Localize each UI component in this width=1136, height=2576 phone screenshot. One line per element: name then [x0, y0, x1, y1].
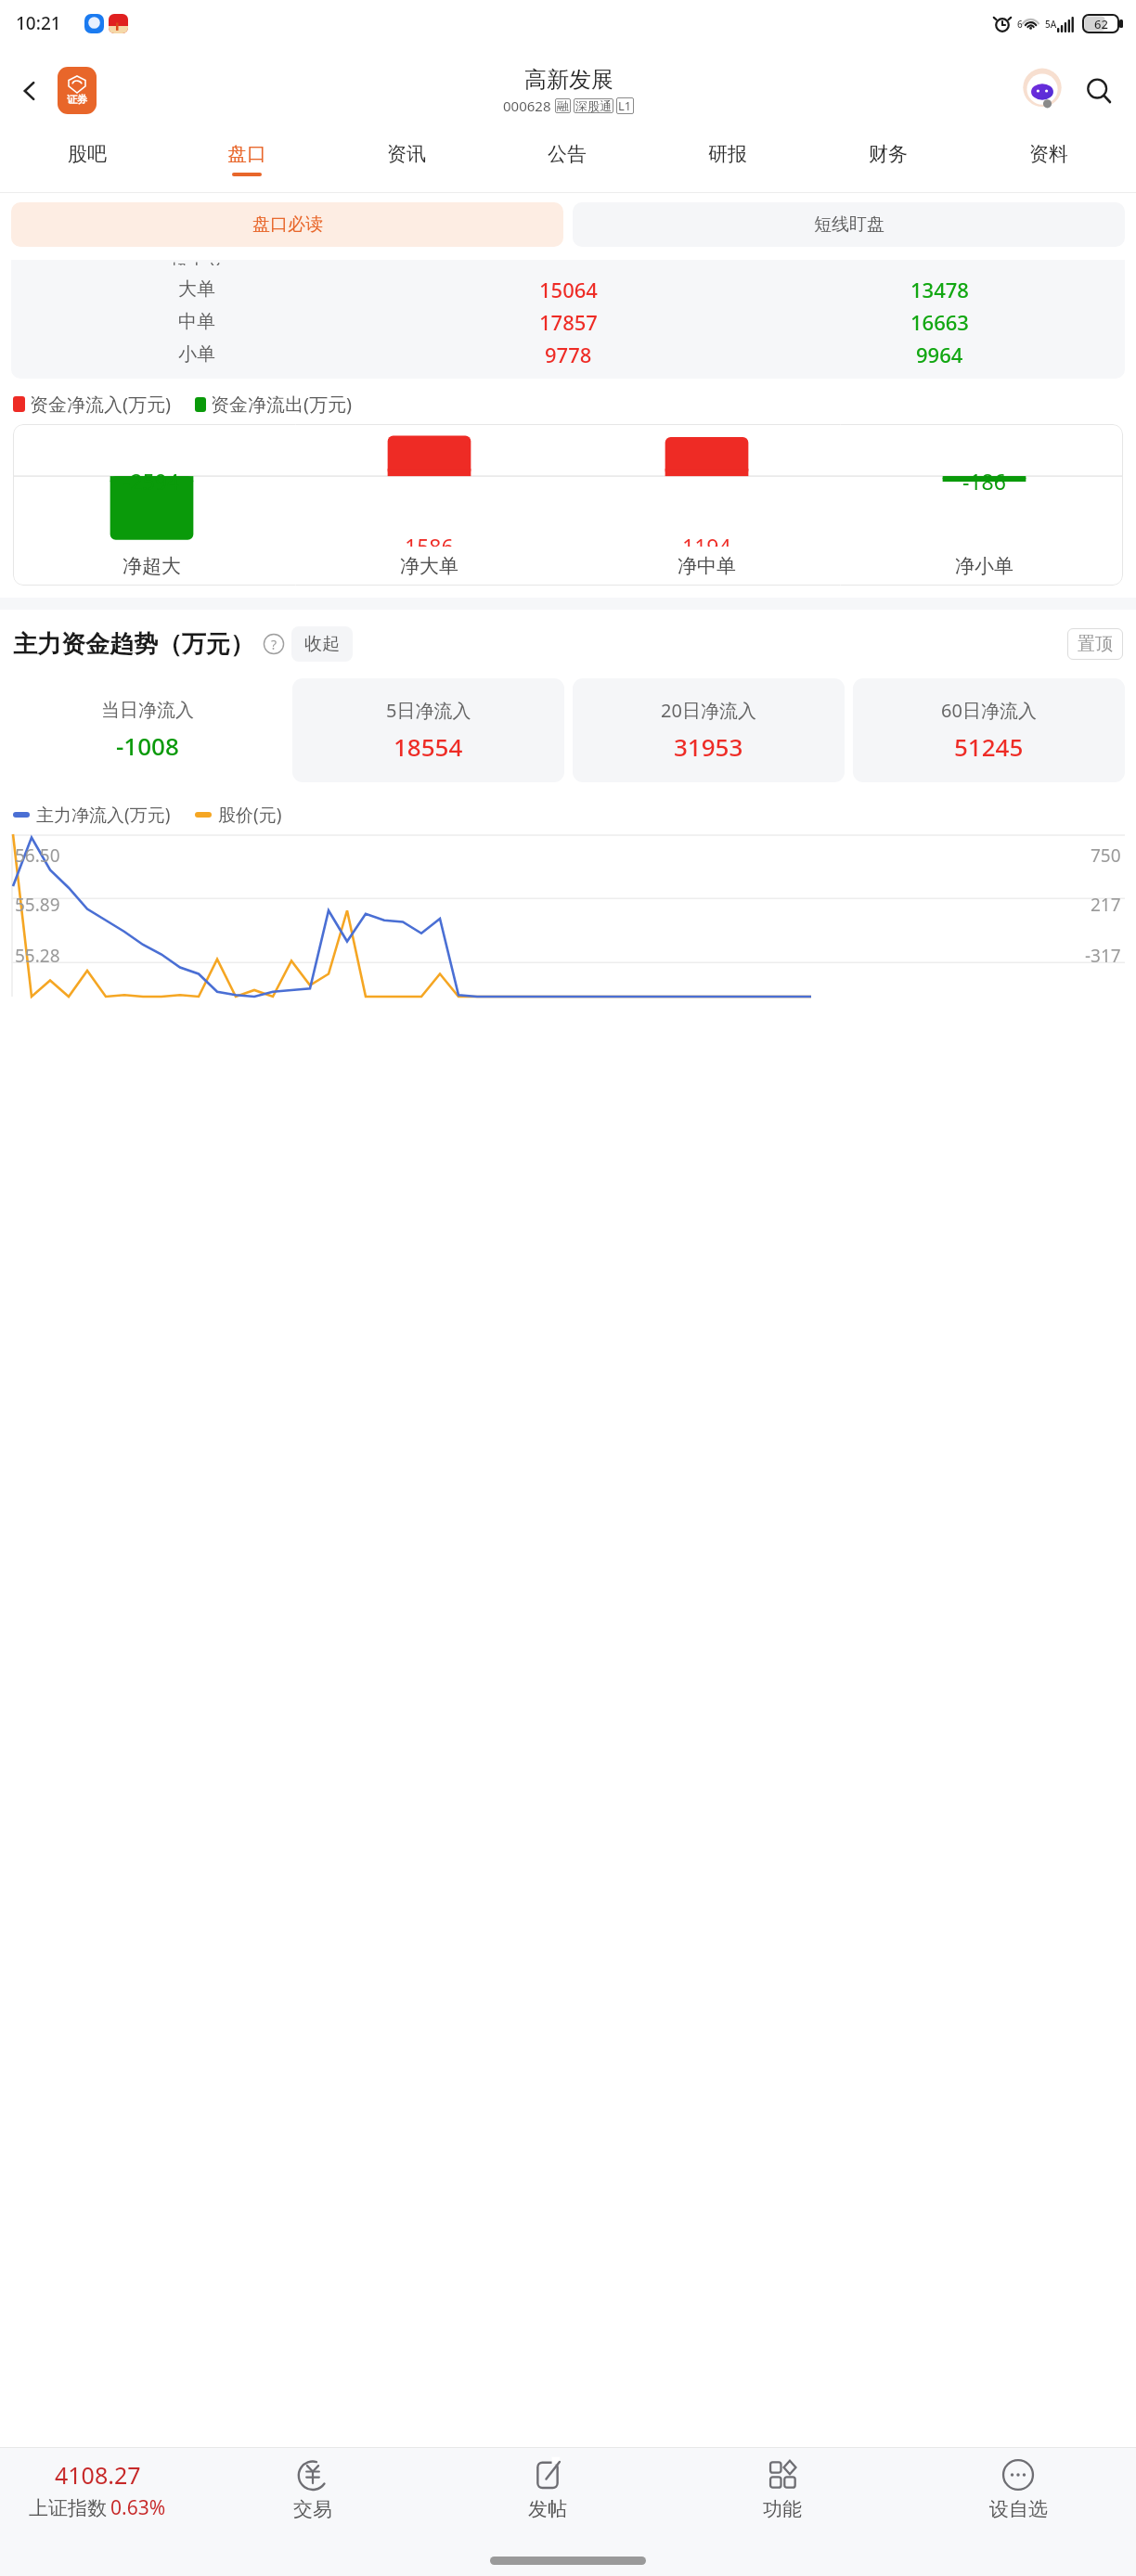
staticText: 55.89 [15, 893, 60, 917]
button[interactable]: Search [1075, 67, 1123, 115]
staticText: 功能 [763, 2497, 802, 2521]
staticText: -186 [962, 467, 1006, 496]
button[interactable]: 股吧 [7, 135, 167, 193]
staticText: 51245 [954, 730, 1024, 763]
button[interactable]: AI助手 [1018, 67, 1066, 115]
staticText: 资料 [1029, 142, 1068, 166]
button[interactable]: 研报 [647, 135, 807, 193]
staticText: 6 [1017, 18, 1023, 31]
staticText: 证券 [67, 93, 87, 106]
staticText: L1 [618, 97, 632, 114]
button[interactable]: 盘口 [167, 135, 327, 193]
staticText: 上证指数 [29, 2496, 107, 2520]
staticText: ? [271, 636, 278, 653]
staticText: 高新发展 [524, 66, 613, 94]
staticText: 净中单 [678, 554, 736, 578]
staticText: 13478 [910, 276, 969, 303]
button[interactable]: 60日净流入 [853, 678, 1125, 782]
staticText: 短线盯盘 [814, 213, 884, 236]
staticText: 9778 [545, 341, 592, 368]
staticText: 资金净流出(万元) [211, 392, 352, 417]
staticText: 000628 [503, 97, 551, 115]
staticText: 深股通 [575, 98, 612, 113]
button[interactable]: 公告 [486, 135, 647, 193]
staticText: 研报 [708, 142, 747, 166]
staticText: 资金净流入(万元) [30, 392, 171, 417]
staticText: 10:21 [16, 11, 61, 35]
button[interactable]: 功能 [665, 2448, 900, 2544]
staticText: 56.50 [15, 844, 60, 868]
button[interactable]: 盘口必读 [11, 202, 563, 247]
button[interactable]: 20日净流入 [573, 678, 845, 782]
button[interactable]: 短线盯盘 [573, 202, 1125, 247]
staticText: 财务 [869, 142, 908, 166]
button[interactable]: 4108.27 [0, 2448, 195, 2544]
staticText: 设自选 [989, 2497, 1048, 2521]
staticText: 5A [1045, 18, 1057, 31]
button[interactable]: 资讯 [327, 135, 486, 193]
staticText: 62 [1094, 16, 1108, 32]
staticText: 超大单 [169, 260, 225, 265]
staticText: 217 [1091, 893, 1121, 917]
staticText: 中单 [178, 310, 215, 333]
staticText: 主力净流入(万元) [36, 803, 171, 827]
staticText: 0.63% [110, 2494, 166, 2521]
staticText: 20日净流入 [661, 698, 756, 723]
button[interactable]: 收起 [291, 626, 353, 662]
staticText: -317 [1085, 944, 1121, 968]
staticText: 发帖 [528, 2497, 567, 2521]
staticText: 股吧 [68, 142, 107, 166]
button[interactable]: 5日净流入 [292, 678, 564, 782]
staticText: 净超大 [123, 554, 181, 578]
staticText: 1586 [405, 532, 454, 547]
staticText: 主力资金趋势（万元） [13, 629, 254, 660]
staticText: 15064 [539, 276, 598, 303]
staticText: 交易 [293, 2497, 332, 2521]
staticText: -2594 [123, 467, 180, 496]
staticText: 750 [1091, 844, 1121, 868]
staticText: 4108.27 [55, 2459, 141, 2491]
button[interactable]: 财务 [807, 135, 968, 193]
button[interactable]: 置顶 [1067, 628, 1123, 660]
staticText: 55.28 [15, 944, 60, 968]
staticText: 盘口必读 [252, 213, 323, 236]
staticText: 融 [557, 98, 569, 113]
button[interactable]: 发帖 [430, 2448, 665, 2544]
staticText: 当日净流入 [101, 699, 194, 722]
staticText: 收起 [304, 633, 340, 655]
staticText: 盘口 [227, 142, 266, 166]
staticText: 60日净流入 [941, 698, 1037, 723]
staticText: -1008 [116, 729, 179, 762]
button[interactable]: Back [7, 69, 52, 113]
staticText: 净小单 [955, 554, 1013, 578]
staticText: 1194 [682, 532, 731, 547]
staticText: 大单 [178, 277, 215, 301]
staticText: 5日净流入 [386, 698, 471, 723]
staticText: 9964 [916, 341, 963, 368]
staticText: 资讯 [387, 142, 426, 166]
staticText: 31953 [674, 730, 743, 763]
button[interactable]: 证券 [58, 67, 97, 114]
staticText: 17857 [539, 308, 598, 336]
staticText: 公告 [548, 142, 587, 166]
button[interactable]: 设自选 [900, 2448, 1136, 2544]
staticText: 18554 [394, 730, 463, 763]
button[interactable]: 当日净流入 [11, 678, 284, 782]
staticText: 净大单 [400, 554, 458, 578]
button[interactable]: 资料 [968, 135, 1129, 193]
staticText: 股价(元) [218, 803, 282, 827]
staticText: 小单 [178, 342, 215, 366]
button[interactable]: 帮助 [262, 632, 286, 656]
staticText: 置顶 [1078, 633, 1113, 655]
staticText: 16663 [910, 308, 969, 336]
button[interactable]: 交易 [195, 2448, 430, 2544]
